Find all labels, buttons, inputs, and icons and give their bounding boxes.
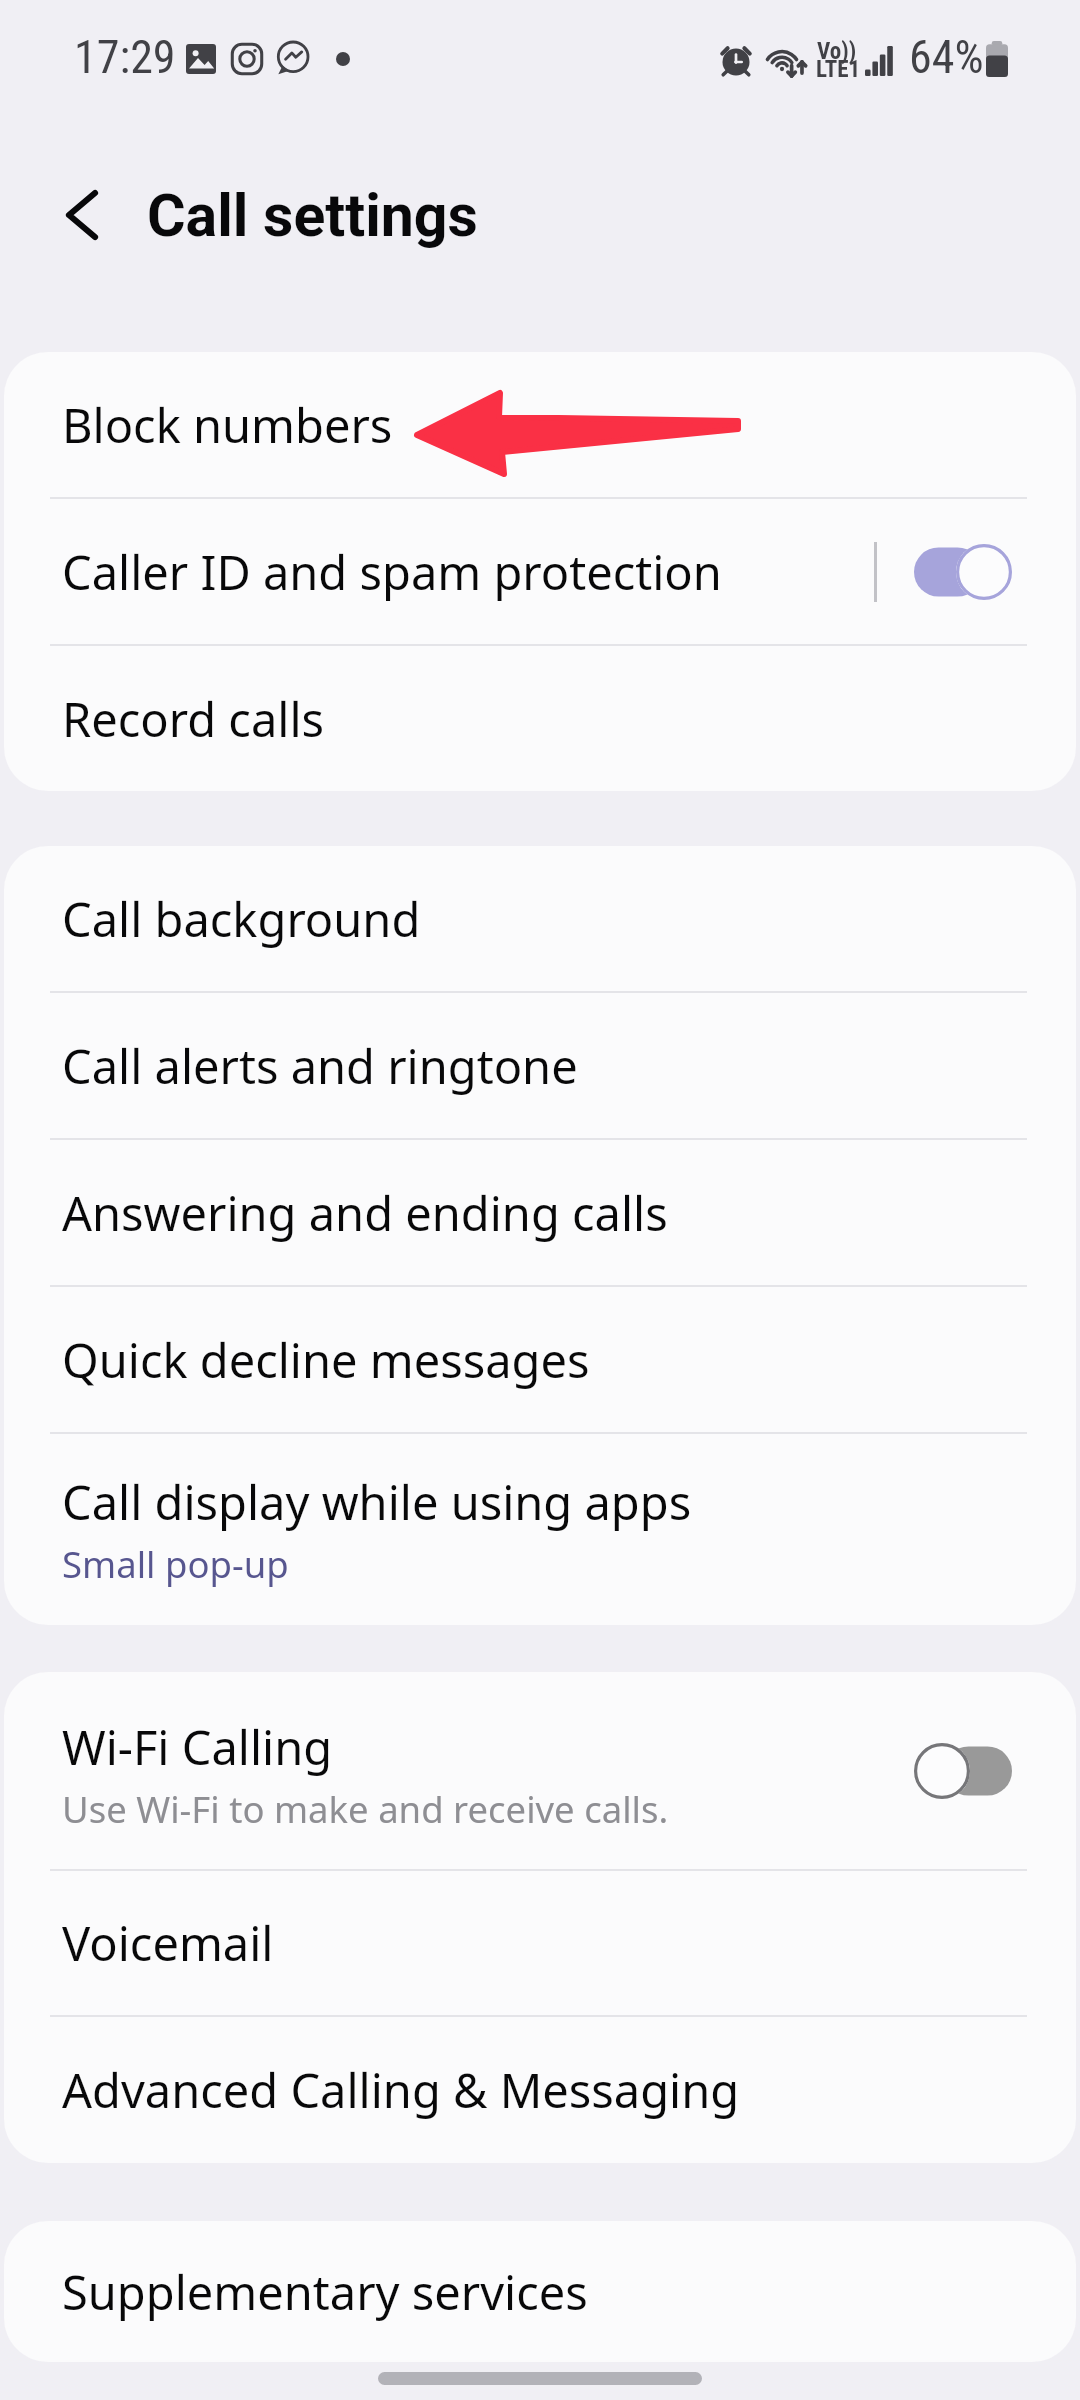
staticText: Answering and ending calls [62,1181,668,1245]
button[interactable]: Voicemail [4,1871,1076,2015]
staticText: Quick decline messages [62,1328,590,1392]
button[interactable]: Call display while using apps [4,1434,1076,1625]
staticText: 17:29 [74,30,176,84]
staticText: Supplementary services [62,2260,588,2324]
button[interactable]: Switch off [914,1740,1012,1802]
staticText: Use Wi-Fi to make and receive calls. [62,1784,669,1834]
staticText: Call background [62,887,421,951]
button[interactable]: Caller ID and spam protection [4,499,1076,644]
button[interactable]: Answering and ending calls [4,1140,1076,1285]
staticText: Advanced Calling & Messaging [62,2058,740,2122]
staticText: Wi-Fi Calling [62,1715,333,1779]
button[interactable]: Wi-Fi Calling [4,1672,1076,1869]
button[interactable]: Block numbers [4,352,1076,497]
staticText: Call settings [147,181,478,250]
staticText: Record calls [62,687,325,751]
button[interactable]: Quick decline messages [4,1287,1076,1432]
staticText: Call alerts and ringtone [62,1034,578,1098]
staticText: Block numbers [62,393,393,457]
staticText: 64% [909,30,984,84]
staticText: LTE1 [816,56,861,83]
button[interactable]: Advanced Calling & Messaging [4,2017,1076,2163]
staticText: Voicemail [62,1911,274,1975]
button[interactable]: Record calls [4,646,1076,791]
staticText: Caller ID and spam protection [62,540,722,604]
staticText: Small pop-up [62,1539,289,1589]
staticText: Vo)) [817,38,857,65]
staticText: Call display while using apps [62,1470,692,1534]
button[interactable]: Switch on [914,541,1012,603]
button[interactable]: Navigate up [42,189,122,269]
button[interactable]: Call background [4,846,1076,991]
button[interactable]: Supplementary services [4,2221,1076,2362]
button[interactable]: Call alerts and ringtone [4,993,1076,1138]
